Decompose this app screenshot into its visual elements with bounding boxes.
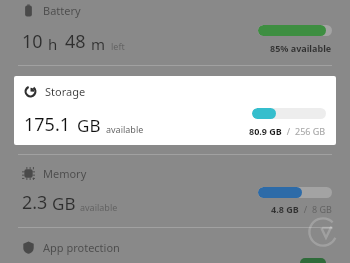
staticText: / <box>299 203 312 215</box>
staticText: 48 <box>65 29 86 54</box>
staticText: available <box>80 201 118 213</box>
staticText: available <box>106 123 144 135</box>
staticText: Storage <box>45 84 86 99</box>
button[interactable]: Battery <box>0 3 350 54</box>
staticText: 256 GB <box>295 125 326 137</box>
staticText: GB <box>52 192 76 215</box>
staticText: m <box>91 34 106 54</box>
button[interactable]: Memory <box>0 160 350 219</box>
staticText: Memory <box>43 166 87 181</box>
button[interactable]: App protection <box>0 240 350 255</box>
staticText: / <box>282 125 295 137</box>
staticText: 80.9 GB <box>249 125 282 137</box>
staticText: 4.8 GB <box>271 203 299 215</box>
staticText: Battery <box>43 3 81 18</box>
staticText: GB <box>77 114 101 137</box>
staticText: 2.3 <box>22 190 48 215</box>
staticText: 175.1 <box>24 112 71 137</box>
staticText: h <box>48 34 58 54</box>
staticText: 85% available <box>270 42 332 54</box>
staticText: left <box>111 40 125 52</box>
staticText: 10 <box>22 29 43 54</box>
staticText: 8 GB <box>312 203 332 215</box>
button[interactable]: Storage <box>14 76 336 145</box>
staticText: App protection <box>43 240 120 255</box>
